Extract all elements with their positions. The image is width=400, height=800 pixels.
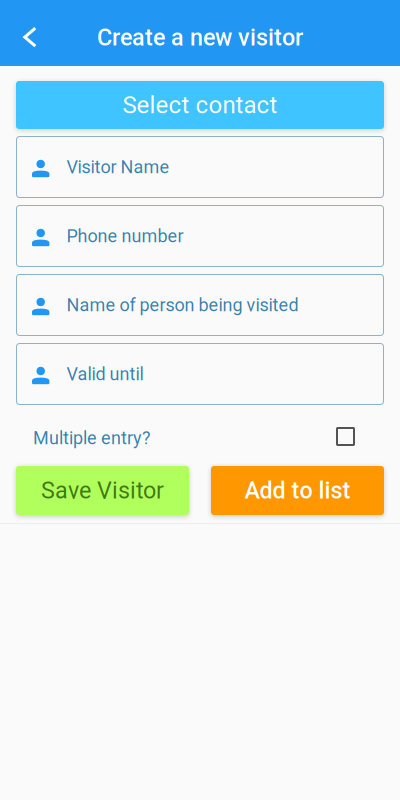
button[interactable]: Select contact	[16, 81, 384, 129]
staticText: Multiple entry?	[33, 427, 151, 449]
button[interactable]: Name of person being visited	[16, 274, 384, 336]
staticText: Visitor Name	[66, 156, 169, 178]
button[interactable]: Phone number	[16, 205, 384, 267]
staticText: Save Visitor	[41, 477, 164, 504]
button[interactable]: Save Visitor	[16, 466, 189, 515]
button[interactable]: Visitor Name	[16, 136, 384, 198]
button[interactable]: Add to list	[211, 466, 384, 515]
staticText: Name of person being visited	[66, 294, 298, 316]
button[interactable]: Back	[8, 1, 52, 65]
button[interactable]: Multiple entry	[336, 427, 384, 449]
staticText: Create a new visitor	[97, 24, 303, 51]
staticText: Select contact	[122, 91, 277, 119]
staticText: Add to list	[244, 477, 350, 504]
button[interactable]: Valid until	[16, 343, 384, 405]
staticText: Valid until	[66, 363, 143, 385]
staticText: Phone number	[66, 225, 183, 247]
